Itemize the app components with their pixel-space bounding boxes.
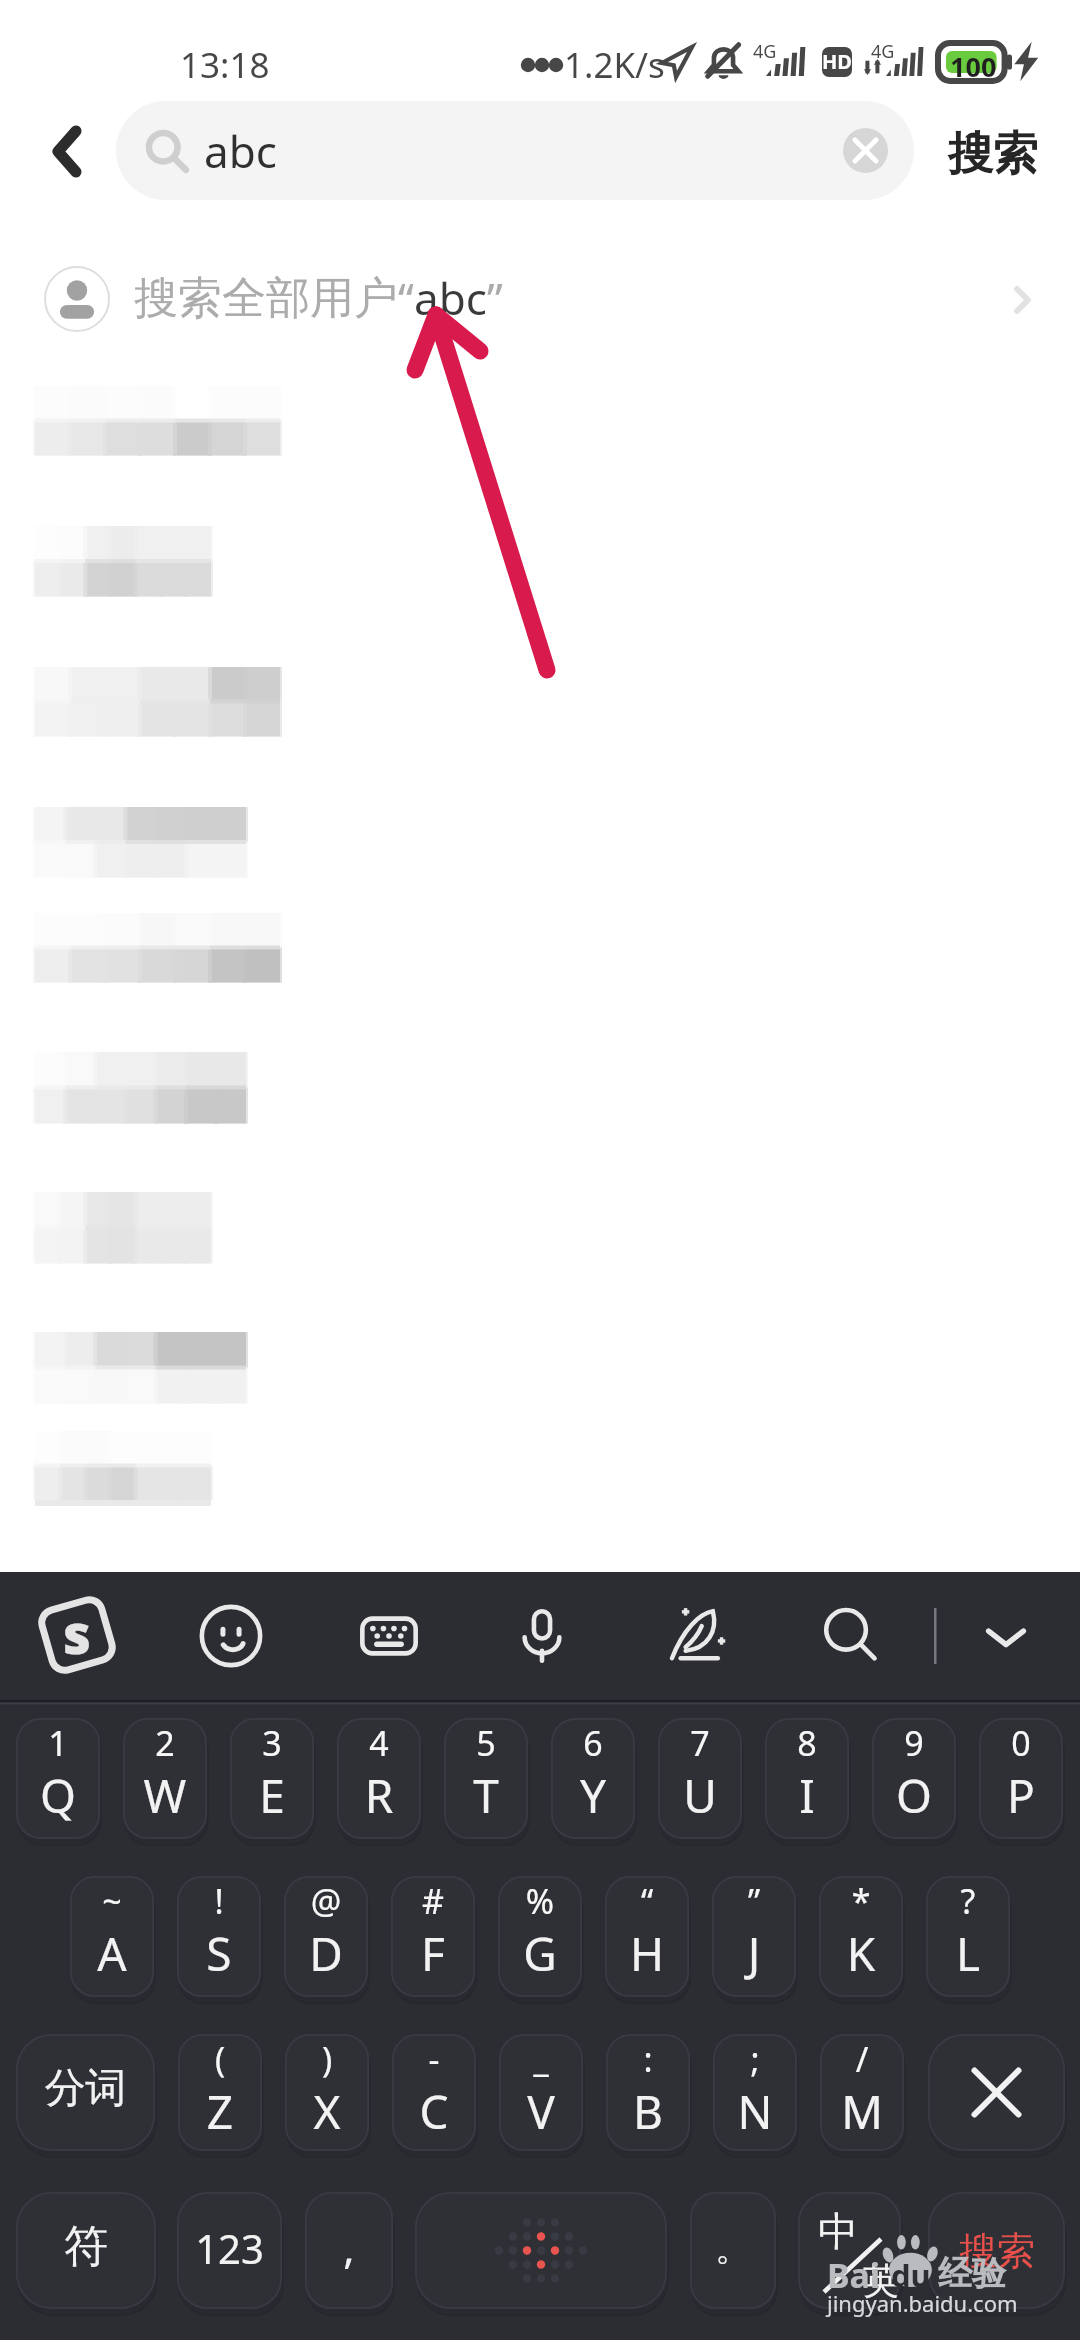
- button[interactable]: 9: [872, 1718, 956, 1844]
- button[interactable]: Voice input: [507, 1601, 577, 1671]
- button[interactable]: :: [606, 2034, 690, 2156]
- staticText: J: [712, 1922, 796, 1985]
- button[interactable]: ”: [712, 1876, 796, 2002]
- staticText: ”: [487, 268, 503, 328]
- button[interactable]: 搜索: [930, 101, 1056, 200]
- button[interactable]: *: [819, 1876, 903, 2002]
- staticText: 2: [123, 1720, 207, 1766]
- staticText: W: [123, 1764, 207, 1827]
- staticText: %: [498, 1878, 582, 1924]
- staticText: 8: [765, 1720, 849, 1766]
- staticText: “: [605, 1878, 689, 1924]
- staticText: 4G: [753, 39, 777, 64]
- staticText: V: [499, 2080, 583, 2143]
- staticText: G: [498, 1922, 582, 1985]
- staticText: ”: [712, 1878, 796, 1924]
- button[interactable]: ): [285, 2034, 369, 2156]
- button[interactable]: (: [178, 2034, 262, 2156]
- button[interactable]: Handwriting: [663, 1601, 733, 1671]
- staticText: R: [337, 1764, 421, 1827]
- staticText: O: [872, 1764, 956, 1827]
- button[interactable]: #: [391, 1876, 475, 2002]
- button[interactable]: 。: [690, 2192, 776, 2314]
- staticText: X: [285, 2080, 369, 2143]
- staticText: 6: [551, 1720, 635, 1766]
- staticText: du: [891, 2254, 931, 2296]
- staticText: E: [230, 1764, 314, 1827]
- button[interactable]: 0: [979, 1718, 1063, 1844]
- staticText: 符: [16, 2219, 156, 2274]
- staticText: abc: [414, 268, 487, 328]
- staticText: 英: [863, 2258, 899, 2303]
- staticText: T: [444, 1764, 528, 1827]
- button[interactable]: 6: [551, 1718, 635, 1844]
- staticText: 1: [16, 1720, 100, 1766]
- staticText: C: [392, 2080, 476, 2143]
- button[interactable]: Clear text: [843, 128, 888, 173]
- button[interactable]: 123: [177, 2192, 282, 2314]
- staticText: H: [605, 1922, 689, 1985]
- button[interactable]: Back: [24, 108, 110, 194]
- button[interactable]: Emoji: [196, 1601, 266, 1671]
- staticText: /: [820, 2036, 904, 2082]
- button[interactable]: Sogou input: [39, 1597, 115, 1673]
- button[interactable]: 8: [765, 1718, 849, 1844]
- staticText: ): [285, 2036, 369, 2082]
- staticText: abc: [204, 121, 277, 181]
- button[interactable]: Switch Chinese English: [798, 2192, 901, 2314]
- staticText: 经验: [938, 2252, 1006, 2295]
- button[interactable]: 5: [444, 1718, 528, 1844]
- button[interactable]: “: [605, 1876, 689, 2002]
- staticText: 1.2K/s: [564, 41, 665, 89]
- staticText: *: [819, 1878, 903, 1924]
- staticText: N: [713, 2080, 797, 2143]
- staticText: 。: [690, 2225, 776, 2270]
- button[interactable]: Space: [415, 2192, 667, 2314]
- button[interactable]: 4: [337, 1718, 421, 1844]
- button[interactable]: @: [284, 1876, 368, 2002]
- button[interactable]: 搜索全部用户: [0, 225, 1080, 375]
- button[interactable]: 符: [16, 2192, 156, 2314]
- button[interactable]: !: [177, 1876, 261, 2002]
- button[interactable]: _: [499, 2034, 583, 2156]
- button[interactable]: Keyboard layout: [354, 1601, 424, 1671]
- button[interactable]: 2: [123, 1718, 207, 1844]
- button[interactable]: abc: [116, 101, 914, 200]
- staticText: HD: [822, 48, 852, 75]
- staticText: 4: [337, 1720, 421, 1766]
- staticText: A: [70, 1922, 154, 1985]
- staticText: ;: [713, 2036, 797, 2082]
- staticText: _: [499, 2036, 583, 2082]
- staticText: F: [391, 1922, 475, 1985]
- staticText: (: [178, 2036, 262, 2082]
- button[interactable]: Hide keyboard: [971, 1601, 1041, 1671]
- staticText: U: [658, 1764, 742, 1827]
- staticText: D: [284, 1922, 368, 1985]
- button[interactable]: /: [820, 2034, 904, 2156]
- staticText: L: [926, 1922, 1010, 1985]
- button[interactable]: Backspace: [928, 2034, 1065, 2156]
- staticText: S: [177, 1922, 261, 1985]
- staticText: 分词: [16, 2063, 155, 2115]
- button[interactable]: ;: [713, 2034, 797, 2156]
- button[interactable]: ,: [305, 2192, 393, 2314]
- button[interactable]: ~: [70, 1876, 154, 2002]
- button[interactable]: 3: [230, 1718, 314, 1844]
- staticText: s: [63, 1596, 91, 1670]
- staticText: K: [819, 1922, 903, 1985]
- staticText: Y: [551, 1764, 635, 1827]
- button[interactable]: 1: [16, 1718, 100, 1844]
- button[interactable]: 7: [658, 1718, 742, 1844]
- staticText: 9: [872, 1720, 956, 1766]
- staticText: I: [765, 1764, 849, 1827]
- staticText: 100: [950, 48, 997, 85]
- button[interactable]: 分词: [16, 2034, 155, 2156]
- button[interactable]: Search: [816, 1601, 886, 1671]
- staticText: Bai: [827, 2252, 881, 2298]
- staticText: @: [284, 1878, 368, 1924]
- button[interactable]: %: [498, 1876, 582, 2002]
- button[interactable]: Search: [928, 2192, 1065, 2314]
- staticText: ~: [70, 1878, 154, 1924]
- button[interactable]: -: [392, 2034, 476, 2156]
- button[interactable]: ?: [926, 1876, 1010, 2002]
